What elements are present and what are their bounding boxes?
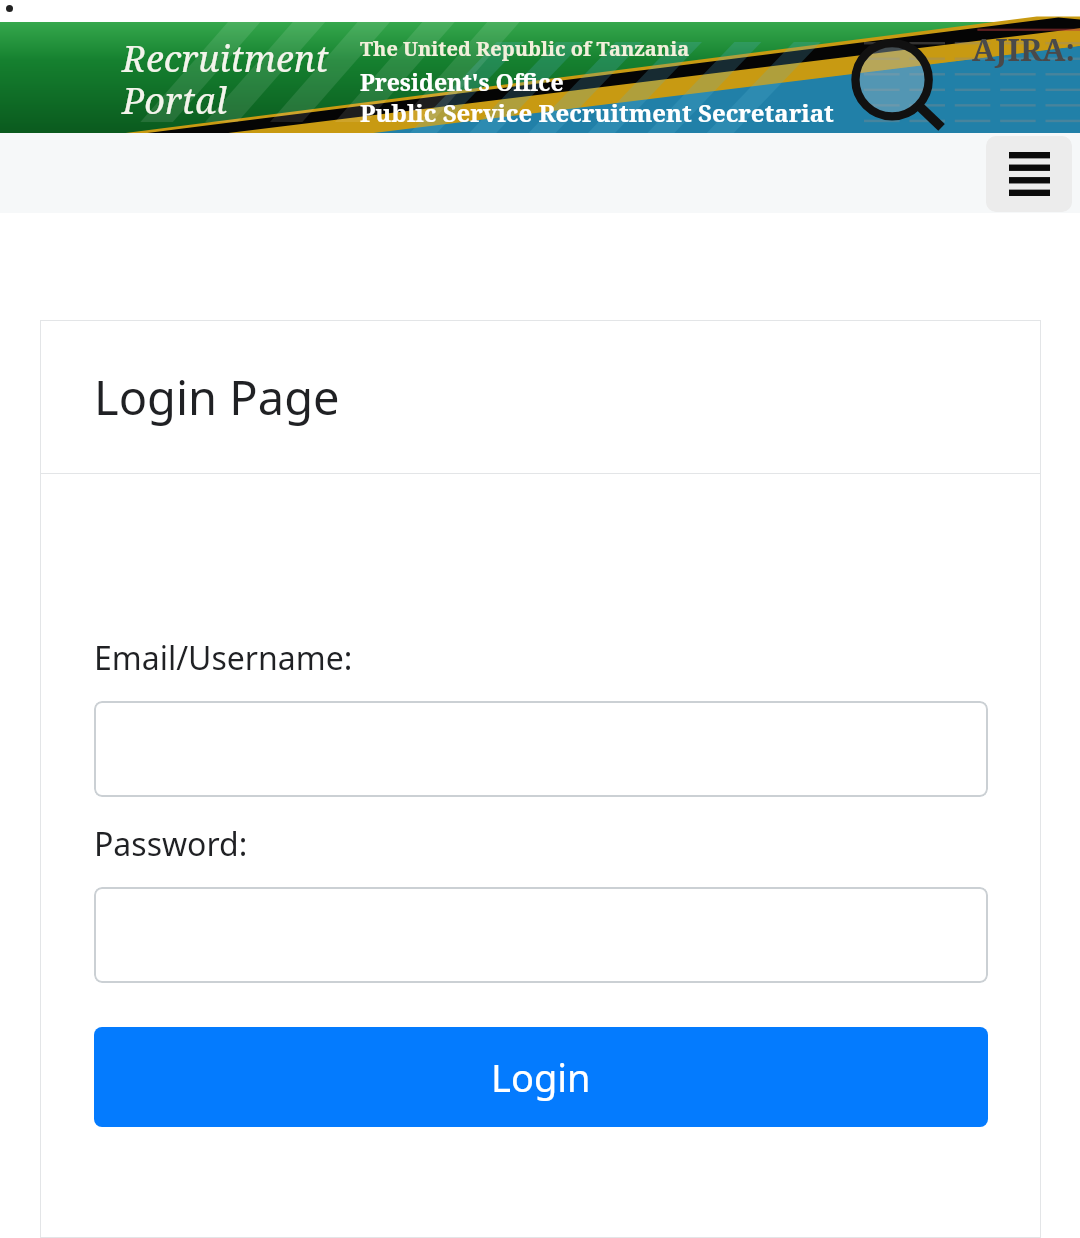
staticText: Login Page xyxy=(94,365,340,429)
button[interactable]: Open navigation menu xyxy=(986,136,1072,212)
staticText: Public Service Recruitment Secretariat xyxy=(360,96,834,129)
staticText: The United Republic of Tanzania xyxy=(360,35,690,62)
staticText: President's Office xyxy=(360,66,564,97)
staticText: AJIRA: SI xyxy=(972,28,1080,70)
button[interactable] xyxy=(94,887,988,983)
staticText: Portal xyxy=(122,76,227,125)
staticText: Email/Username: xyxy=(94,636,353,680)
staticText: Login xyxy=(491,1051,591,1103)
button[interactable]: Login xyxy=(94,1027,988,1127)
staticText: Recruitment xyxy=(122,34,329,83)
staticText: Password: xyxy=(94,822,248,866)
button[interactable] xyxy=(94,701,988,797)
